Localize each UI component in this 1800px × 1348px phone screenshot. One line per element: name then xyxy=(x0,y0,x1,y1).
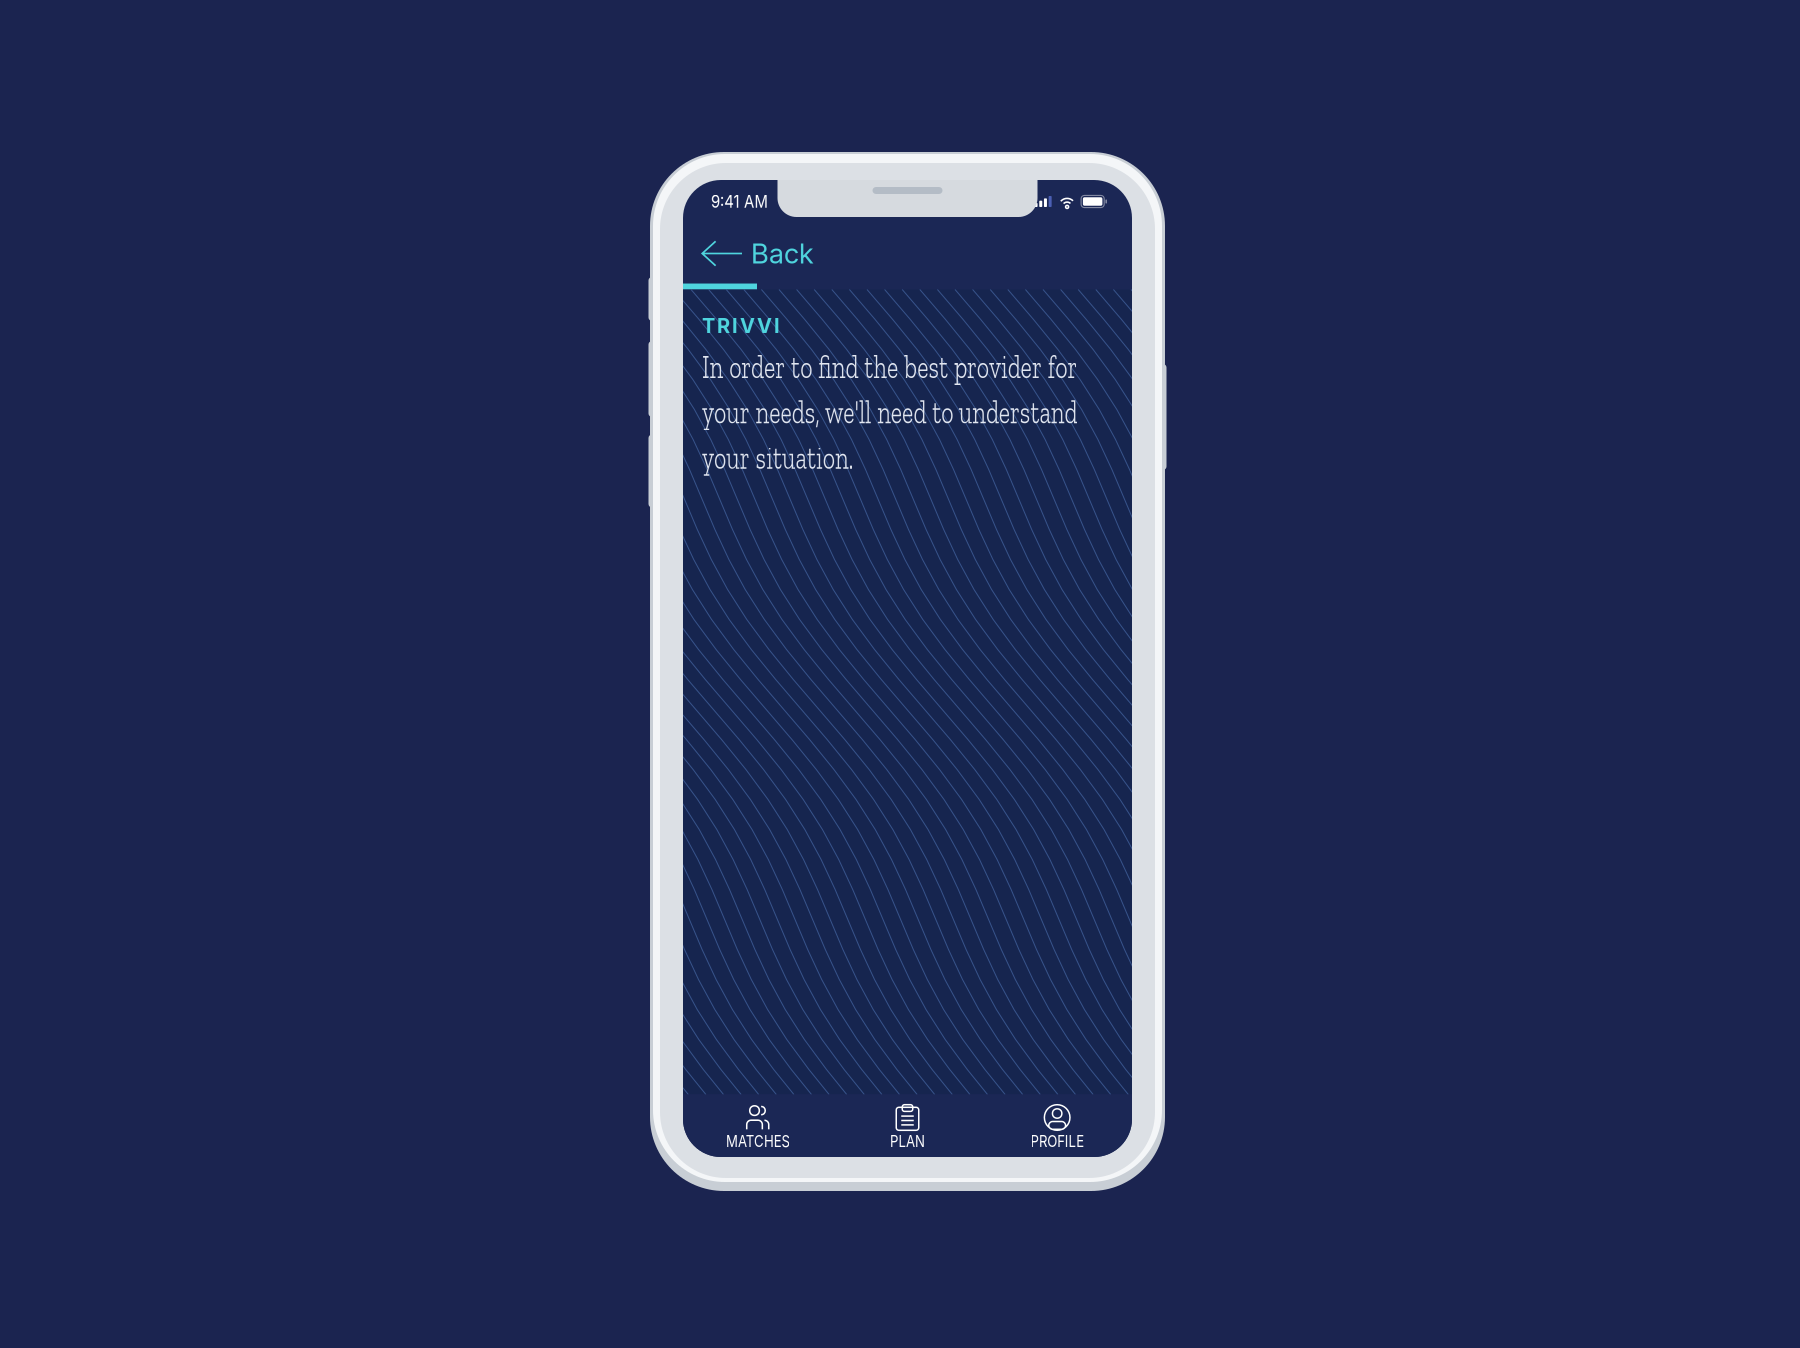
button[interactable]: Back xyxy=(683,223,1132,283)
staticText: Back xyxy=(751,237,814,270)
staticText: 9:41 AM xyxy=(711,189,792,214)
button[interactable]: PLAN xyxy=(833,1095,982,1157)
staticText: MATCHES xyxy=(716,1130,800,1151)
button[interactable]: MATCHES xyxy=(683,1095,833,1157)
button[interactable]: PROFILE xyxy=(982,1095,1132,1157)
staticText: T R I V V I xyxy=(702,313,780,338)
staticText: In order to find the best provider for y… xyxy=(702,348,1199,477)
staticText: PROFILE xyxy=(1022,1130,1092,1151)
staticText: PLAN xyxy=(884,1130,930,1151)
